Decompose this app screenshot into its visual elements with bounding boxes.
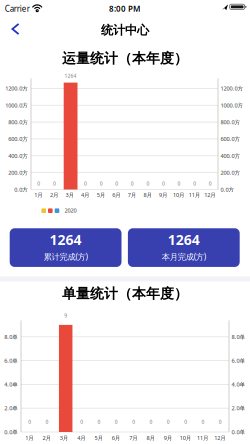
staticText: 10月 [173,191,185,199]
staticText: 1264 [168,230,200,249]
staticText: 0 [115,418,118,425]
staticText: 0 [219,418,222,425]
staticText: 5月 [97,191,106,199]
staticText: 8:00 PM [109,3,140,14]
staticText: 10月 [180,434,192,442]
staticText: 400.0方 [8,152,28,160]
staticText: 1月 [25,434,34,442]
staticText: 0 [132,418,135,425]
staticText: 0.0单 [4,428,18,436]
staticText: 9月 [164,434,173,442]
staticText: 6月 [112,434,121,442]
staticText: 4.0单 [231,381,245,388]
staticText: 0 [184,418,187,425]
staticText: 600.0方 [8,135,28,143]
staticText: 0 [162,180,165,187]
staticText: 12月 [204,191,216,199]
staticText: 6月 [112,191,121,199]
staticText: 0 [37,180,40,187]
staticText: 5月 [94,434,103,442]
staticText: 单量统计（本年度） [62,285,188,302]
staticText: 0 [115,180,118,187]
staticText: 0 [45,418,48,425]
staticText: 0 [97,418,100,425]
staticText: 7月 [129,434,138,442]
staticText: 0.0方 [220,186,234,193]
staticText: 7月 [128,191,137,199]
staticText: 3月 [65,191,74,199]
staticText: 8月 [143,191,152,199]
staticText: 1000.0方 [220,101,243,109]
staticText: 11月 [197,434,209,442]
staticText: 1000.0方 [5,101,28,109]
staticText: 4月 [81,191,90,199]
staticText: 1200.0方 [5,85,28,92]
staticText: 400.0方 [220,152,240,160]
staticText: 6.0单 [4,357,18,364]
staticText: 2.0单 [231,404,245,412]
staticText: 2月 [50,191,59,199]
staticText: 统计中心 [101,22,149,38]
staticText: 8.0单 [4,333,18,341]
button[interactable] [6,19,24,39]
staticText: 12月 [214,434,226,442]
staticText: 0 [100,180,103,187]
staticText: Carrier [5,3,30,14]
staticText: 4月 [77,434,86,442]
staticText: 2.0单 [4,404,18,412]
staticText: 200.0方 [8,169,28,176]
staticText: 0 [209,180,212,187]
staticText: 9 [64,312,67,319]
staticText: 2020 [64,207,76,214]
staticText: 4.0单 [4,381,18,388]
button[interactable]: 1264 [10,228,121,267]
staticText: 0 [149,418,152,425]
staticText: 0 [193,180,196,187]
button[interactable]: 1264 [128,228,240,267]
staticText: 3月 [60,434,69,442]
staticText: 6.0单 [231,357,245,364]
staticText: 0 [167,418,170,425]
staticText: 0.0单 [231,428,245,436]
staticText: 600.0方 [220,135,240,143]
staticText: 8月 [146,434,155,442]
staticText: 800.0方 [220,118,240,126]
staticText: 0 [53,180,56,187]
staticText: 0 [80,418,83,425]
staticText: 运量统计（本年度） [62,50,188,67]
staticText: 1264 [65,72,77,79]
staticText: 1200.0方 [220,85,243,92]
staticText: 0 [28,418,31,425]
staticText: 2月 [42,434,51,442]
staticText: 0 [177,180,180,187]
staticText: 0 [201,418,204,425]
staticText: 0 [146,180,149,187]
staticText: 0.0方 [14,186,28,193]
staticText: 200.0方 [220,169,240,176]
staticText: 9月 [159,191,168,199]
staticText: 0 [84,180,87,187]
staticText: 8.0单 [231,333,245,341]
staticText: 800.0方 [8,118,28,126]
staticText: 累计完成(方) [44,251,88,262]
staticText: 本月完成(方) [162,251,206,262]
staticText: 1264 [50,230,82,249]
staticText: 11月 [189,191,201,199]
staticText: 0 [131,180,134,187]
staticText: 1月 [34,191,43,199]
